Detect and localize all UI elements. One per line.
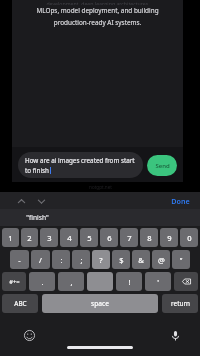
staticText: 6 [107,233,112,243]
staticText: ; [80,255,83,265]
button[interactable]: How are ai images created from start [18,152,143,178]
staticText: . [41,277,44,287]
button[interactable]: #+= [2,272,26,291]
button[interactable]: Key [87,272,113,291]
button[interactable]: - [10,250,29,269]
button[interactable]: Next field [34,194,48,208]
staticText: "finish" [26,213,49,222]
staticText: & [138,255,144,265]
button[interactable]: $ [112,250,130,269]
staticText: " [179,255,183,265]
staticText: @ [158,255,165,265]
button[interactable]: : [52,250,70,269]
button[interactable]: Send [147,155,177,176]
button[interactable]: @ [152,250,170,269]
button[interactable]: Backspace [174,272,198,291]
button[interactable]: space [42,294,158,313]
button[interactable]: . [29,272,55,291]
staticText: 5 [87,233,92,243]
staticText: Done [171,196,190,206]
staticText: 1 [8,233,13,243]
staticText: development, deep learning architectures… [46,0,150,5]
staticText: return [171,299,190,308]
button[interactable]: ? [92,250,110,269]
staticText: ! [128,277,131,287]
staticText: 3 [47,233,52,243]
staticText: 0 [187,233,192,243]
button[interactable]: , [58,272,84,291]
button[interactable]: ABC [2,294,38,313]
button[interactable]: / [31,250,50,269]
staticText: notgpt.net [89,184,112,190]
button[interactable]: Previous field [14,194,28,208]
staticText: Send [155,162,170,170]
button[interactable]: 0 [180,228,198,247]
button[interactable]: "finish" [26,213,49,222]
staticText: $ [119,255,124,265]
button[interactable]: 8 [140,228,158,247]
button[interactable]: ! [116,272,142,291]
button[interactable]: ' [145,272,171,291]
staticText: - [18,255,21,265]
button[interactable]: 4 [60,228,78,247]
staticText: / [39,255,42,265]
button[interactable]: 5 [80,228,98,247]
staticText: 4 [67,233,72,243]
staticText: ? [99,255,103,265]
button[interactable]: 3 [40,228,58,247]
staticText: 8 [147,233,152,243]
staticText: How are ai images created from start [25,156,135,165]
button[interactable]: & [132,250,150,269]
button[interactable]: Emoji [22,328,36,342]
button[interactable]: " [172,250,190,269]
staticText: space [91,299,109,308]
staticText: MLOps, model deployment, and building [12,6,183,15]
button[interactable]: Done [171,196,190,206]
button[interactable]: return [162,294,198,313]
staticText: , [70,277,73,287]
staticText: #+= [9,278,20,286]
button[interactable]: ; [72,250,90,269]
button[interactable]: 2 [21,228,38,247]
button[interactable]: 9 [160,228,178,247]
staticText: ' [157,277,159,287]
staticText: to finish [25,166,49,175]
button[interactable]: 7 [120,228,138,247]
button[interactable]: Dictation [168,328,182,342]
staticText: 9 [167,233,172,243]
staticText: : [60,255,63,265]
staticText: ABC [14,299,27,308]
button[interactable]: 6 [100,228,118,247]
staticText: 2 [27,233,32,243]
staticText: production-ready AI systems. [12,18,183,27]
staticText: 7 [127,233,132,243]
button[interactable]: 1 [2,228,19,247]
